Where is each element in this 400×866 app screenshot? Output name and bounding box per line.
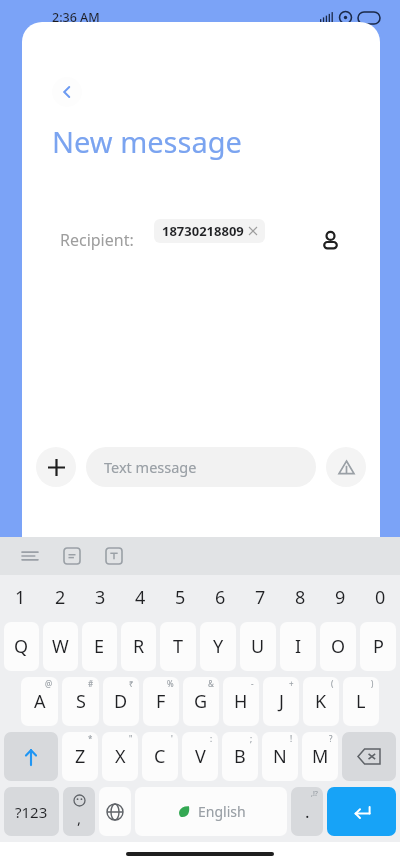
button[interactable]: 18730218809 bbox=[154, 219, 265, 243]
button[interactable]: T bbox=[160, 622, 196, 671]
button[interactable]: + bbox=[263, 677, 299, 726]
button[interactable]: O bbox=[320, 622, 356, 671]
button[interactable]: ?123 bbox=[4, 787, 59, 836]
staticText: ( bbox=[331, 678, 334, 689]
button[interactable]: I bbox=[280, 622, 316, 671]
staticText: U bbox=[251, 634, 265, 659]
staticText: H bbox=[234, 689, 248, 714]
button[interactable]: Menu bbox=[18, 544, 42, 568]
button[interactable]: Period bbox=[291, 787, 323, 836]
staticText: 4 bbox=[135, 585, 146, 610]
button[interactable]: Emoji and comma bbox=[63, 787, 95, 836]
button[interactable]: 9 bbox=[320, 575, 360, 619]
staticText: 0 bbox=[375, 585, 386, 610]
staticText: Y bbox=[213, 634, 224, 659]
button[interactable]: % bbox=[143, 677, 179, 726]
button[interactable]: ' bbox=[142, 732, 178, 781]
staticText: 6 bbox=[215, 585, 226, 610]
staticText: W bbox=[52, 634, 69, 659]
button[interactable]: R bbox=[121, 622, 156, 671]
staticText: ₹ bbox=[129, 678, 134, 689]
button[interactable]: ! bbox=[262, 732, 298, 781]
staticText: T bbox=[173, 634, 184, 659]
staticText: " bbox=[129, 733, 133, 744]
button[interactable]: 8 bbox=[280, 575, 320, 619]
staticText: 1 bbox=[15, 585, 26, 610]
button[interactable]: Q bbox=[4, 622, 39, 671]
staticText: Text message bbox=[104, 457, 197, 477]
button[interactable]: 5 bbox=[160, 575, 200, 619]
button[interactable]: ; bbox=[222, 732, 258, 781]
button[interactable]: Backspace bbox=[342, 732, 396, 781]
button[interactable]: Attach bbox=[36, 447, 76, 487]
button[interactable]: Text message bbox=[86, 447, 316, 487]
staticText: B bbox=[234, 744, 246, 769]
button[interactable]: ₹ bbox=[103, 677, 139, 726]
staticText: * bbox=[88, 733, 93, 744]
button[interactable]: 3 bbox=[80, 575, 120, 619]
button[interactable]: English bbox=[135, 787, 287, 836]
staticText: I bbox=[295, 634, 302, 659]
staticText: V bbox=[195, 744, 206, 769]
button[interactable]: @ bbox=[21, 677, 58, 726]
button[interactable]: 0 bbox=[360, 575, 400, 619]
staticText: @ bbox=[45, 678, 53, 689]
staticText: J bbox=[279, 689, 284, 714]
button[interactable]: W bbox=[43, 622, 78, 671]
staticText: # bbox=[88, 678, 94, 689]
staticText: English bbox=[198, 802, 246, 821]
button[interactable]: Clipboard bbox=[60, 544, 84, 568]
button[interactable]: : bbox=[182, 732, 218, 781]
staticText: ! bbox=[290, 733, 293, 744]
button[interactable]: U bbox=[240, 622, 276, 671]
staticText: Recipient: bbox=[60, 229, 134, 251]
staticText: 3 bbox=[95, 585, 106, 610]
staticText: ? bbox=[329, 733, 333, 744]
button[interactable]: Shift bbox=[4, 732, 58, 781]
button[interactable]: Back bbox=[52, 77, 82, 107]
staticText: S bbox=[76, 689, 86, 714]
button[interactable]: E bbox=[82, 622, 117, 671]
button[interactable]: # bbox=[62, 677, 99, 726]
staticText: New message bbox=[52, 122, 242, 161]
button[interactable]: Y bbox=[200, 622, 236, 671]
button[interactable]: 1 bbox=[0, 575, 40, 619]
staticText: . bbox=[305, 800, 310, 823]
button[interactable]: - bbox=[223, 677, 259, 726]
button[interactable]: Text tools bbox=[102, 544, 126, 568]
button[interactable]: 4 bbox=[120, 575, 160, 619]
button[interactable]: 6 bbox=[200, 575, 240, 619]
button[interactable]: ? bbox=[302, 732, 338, 781]
staticText: 8 bbox=[295, 585, 306, 610]
button[interactable]: P bbox=[360, 622, 396, 671]
button[interactable]: " bbox=[102, 732, 138, 781]
staticText: 7 bbox=[255, 585, 266, 610]
button[interactable]: 7 bbox=[240, 575, 280, 619]
button[interactable]: Enter bbox=[327, 787, 396, 836]
button[interactable]: Change language bbox=[99, 787, 131, 836]
button[interactable]: Add contact bbox=[316, 226, 344, 254]
staticText: 2 bbox=[55, 585, 66, 610]
staticText: C bbox=[154, 744, 166, 769]
staticText: ?123 bbox=[15, 802, 48, 822]
staticText: G bbox=[194, 689, 208, 714]
staticText: K bbox=[315, 689, 327, 714]
staticText: ' bbox=[171, 733, 173, 744]
staticText: M bbox=[312, 744, 329, 769]
staticText: F bbox=[156, 689, 166, 714]
staticText: & bbox=[208, 678, 214, 689]
staticText: , bbox=[77, 808, 82, 828]
staticText: R bbox=[133, 634, 145, 659]
button[interactable]: 2 bbox=[40, 575, 80, 619]
button[interactable]: * bbox=[62, 732, 98, 781]
button[interactable]: Send bbox=[326, 447, 366, 487]
button[interactable]: ) bbox=[343, 677, 379, 726]
button[interactable]: & bbox=[183, 677, 219, 726]
staticText: 2:36 AM bbox=[52, 9, 100, 26]
staticText: N bbox=[273, 744, 287, 769]
button[interactable]: ( bbox=[303, 677, 339, 726]
staticText: % bbox=[167, 678, 174, 689]
staticText: 9 bbox=[335, 585, 346, 610]
staticText: : bbox=[210, 733, 213, 744]
staticText: Z bbox=[75, 744, 86, 769]
